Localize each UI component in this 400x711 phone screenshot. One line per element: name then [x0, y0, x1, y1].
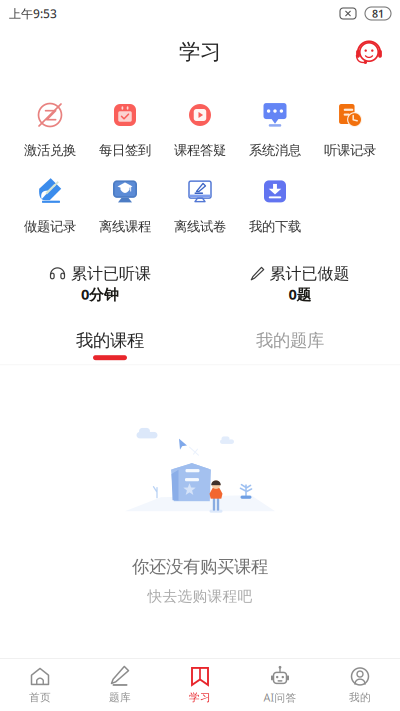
staticText: 学习: [179, 39, 221, 65]
button[interactable]: 我的下载: [237, 178, 312, 235]
staticText: 快去选购课程吧: [147, 587, 252, 605]
button[interactable]: 首页: [0, 659, 80, 711]
button[interactable]: AI问答: [240, 659, 320, 711]
staticText: 课程答疑: [174, 142, 226, 158]
button[interactable]: 客服: [349, 32, 389, 72]
staticText: 0题: [288, 284, 311, 304]
staticText: 上午9:53: [9, 5, 57, 21]
staticText: 81: [372, 6, 384, 21]
staticText: 累计已听课: [71, 264, 151, 283]
button[interactable]: 离线试卷: [162, 178, 237, 235]
staticText: 做题记录: [24, 218, 76, 235]
staticText: 0分钟: [81, 284, 119, 304]
button[interactable]: 离线课程: [87, 178, 162, 235]
button[interactable]: 我的题库: [200, 330, 380, 360]
staticText: 学习: [189, 691, 211, 704]
staticText: 听课记录: [324, 142, 376, 158]
staticText: 离线课程: [99, 218, 151, 235]
staticText: 首页: [29, 691, 51, 704]
staticText: 累计已做题: [269, 264, 349, 283]
staticText: 每日签到: [99, 142, 151, 158]
button[interactable]: 每日签到: [87, 102, 162, 158]
button[interactable]: 激活兑换: [12, 102, 87, 158]
staticText: 激活兑换: [24, 142, 76, 158]
button[interactable]: 学习: [160, 659, 240, 711]
staticText: AI问答: [263, 690, 296, 705]
button[interactable]: 我的课程: [20, 330, 200, 360]
button[interactable]: 题库: [80, 659, 160, 711]
staticText: 系统消息: [249, 142, 301, 158]
staticText: 我的下载: [249, 218, 301, 235]
staticText: 离线试卷: [174, 218, 226, 235]
staticText: 我的课程: [76, 330, 144, 351]
button[interactable]: 做题记录: [12, 178, 87, 235]
button[interactable]: 系统消息: [237, 102, 312, 158]
staticText: 你还没有购买课程: [132, 556, 268, 577]
staticText: 题库: [109, 691, 131, 704]
button[interactable]: 听课记录: [312, 102, 387, 158]
staticText: 我的题库: [256, 330, 324, 351]
button[interactable]: 我的: [320, 659, 400, 711]
button[interactable]: 课程答疑: [162, 102, 237, 158]
staticText: 我的: [349, 691, 371, 704]
